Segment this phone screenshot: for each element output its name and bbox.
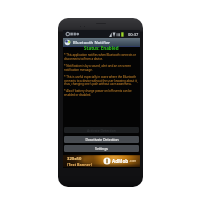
- staticText: Bluetooth Notifier: [73, 40, 111, 46]
- staticText: 320x50: [67, 156, 82, 162]
- staticText: 00:37: [128, 32, 139, 37]
- staticText: .com: [129, 159, 137, 163]
- staticText: Activate Detection: [87, 128, 116, 133]
- button[interactable]: Activate Detection: [64, 127, 139, 133]
- staticText: * This application notifies when Bluetoo…: [64, 53, 138, 60]
- staticText: * Also if battery charge power on/off ev…: [64, 89, 138, 96]
- staticText: Status: Enabled: [84, 45, 119, 51]
- staticText: Deactivate Detection: [85, 137, 119, 142]
- staticText: * Notification is by a sound, alert and …: [64, 64, 138, 71]
- button[interactable]: Advertisement: [63, 155, 140, 167]
- staticText: Settings: [95, 146, 108, 151]
- staticText: * This is useful especially in cases whe…: [64, 75, 138, 85]
- button[interactable]: Settings: [64, 145, 139, 152]
- staticText: (Test Banner): [67, 162, 93, 167]
- staticText: AdMob: [112, 158, 129, 164]
- button[interactable]: Deactivate Detection: [64, 136, 139, 143]
